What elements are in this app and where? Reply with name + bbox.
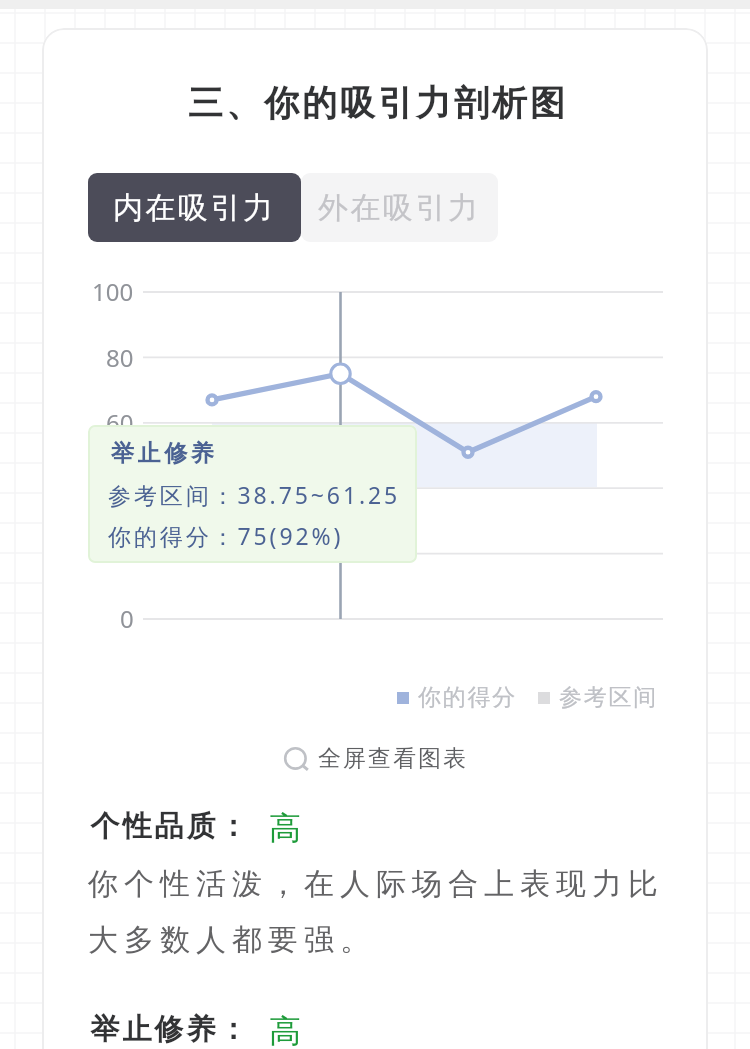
other: View chart full screen (284, 746, 310, 772)
staticText: 100 (92, 275, 134, 308)
staticText: 个性品质： (89, 808, 249, 845)
staticText: 举止修养 (111, 439, 218, 468)
staticText: 内在吸引力 (113, 189, 276, 227)
staticText: 外在吸引力 (318, 189, 481, 227)
staticText: 你个性活泼，在人际场合上表现力比大多数人都要强。 (88, 865, 688, 959)
staticText: 80 (106, 341, 134, 374)
staticText: 高 (269, 808, 301, 848)
staticText: 举止修养： (89, 1011, 249, 1048)
staticText: 参考区间：38.75~61.25 (108, 479, 401, 510)
staticText: 全屏查看图表 (317, 744, 467, 773)
staticText: 高 (269, 1011, 301, 1049)
staticText: 三、你的吸引力剖析图 (3, 81, 750, 125)
staticText: 参考区间 (559, 683, 658, 712)
staticText: 你的得分：75(92%) (108, 520, 344, 551)
staticText: 0 (120, 602, 134, 635)
staticText: 你的得分 (418, 683, 517, 712)
button[interactable]: View chart full screen (0, 744, 750, 773)
staticText: 60 (106, 406, 134, 439)
button[interactable]: 外在吸引力 (301, 173, 498, 242)
button[interactable]: 内在吸引力 (88, 173, 301, 242)
